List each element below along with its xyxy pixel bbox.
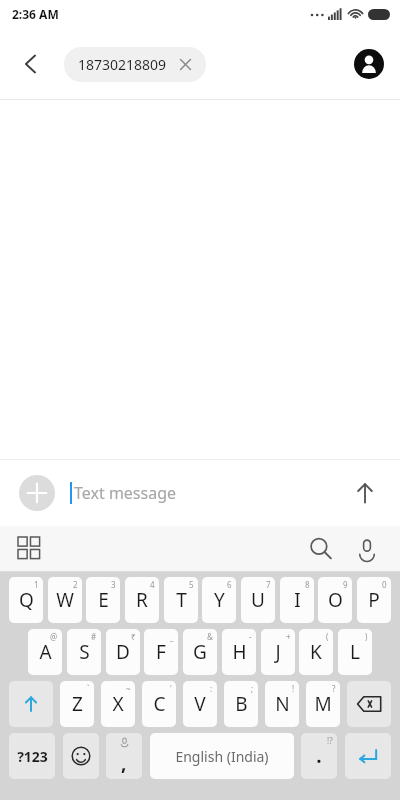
- staticText: 9: [343, 579, 348, 590]
- staticText: 1: [34, 579, 39, 590]
- button[interactable]: Contact profile: [354, 49, 384, 79]
- staticText: 18730218809: [78, 55, 167, 74]
- staticText: X: [112, 691, 124, 717]
- button[interactable]: V: [183, 681, 217, 727]
- staticText: Z: [72, 691, 83, 717]
- staticText: ?123: [17, 747, 48, 766]
- button[interactable]: U: [241, 577, 275, 623]
- button[interactable]: K: [299, 629, 333, 675]
- button[interactable]: Y: [202, 577, 236, 623]
- staticText: (: [326, 631, 329, 642]
- staticText: !: [292, 683, 295, 694]
- staticText: ': [170, 683, 172, 694]
- staticText: 3: [111, 579, 116, 590]
- button[interactable]: Emoji: [63, 733, 99, 779]
- button[interactable]: G: [183, 629, 217, 675]
- staticText: V: [194, 691, 206, 717]
- staticText: L: [350, 639, 360, 665]
- button[interactable]: ?123: [9, 733, 55, 779]
- button[interactable]: N: [265, 681, 299, 727]
- staticText: ;: [251, 683, 254, 694]
- staticText: Text message: [74, 482, 177, 504]
- staticText: !?: [327, 735, 333, 746]
- button[interactable]: 18730218809: [64, 47, 206, 82]
- staticText: B: [235, 691, 248, 717]
- button[interactable]: Search: [308, 536, 334, 562]
- staticText: U: [251, 587, 265, 613]
- staticText: K: [310, 639, 322, 665]
- button[interactable]: M: [306, 681, 340, 727]
- staticText: ): [365, 631, 368, 642]
- staticText: C: [153, 691, 166, 717]
- staticText: S: [79, 639, 90, 665]
- staticText: _: [170, 631, 174, 642]
- staticText: Q: [19, 587, 34, 613]
- staticText: &: [207, 631, 213, 642]
- staticText: 2: [73, 579, 78, 590]
- staticText: A: [39, 639, 52, 665]
- staticText: .: [316, 743, 322, 769]
- button[interactable]: Voice input: [354, 536, 380, 562]
- button[interactable]: J: [261, 629, 295, 675]
- staticText: 2:36 AM: [12, 6, 59, 22]
- button[interactable]: Comma: [106, 733, 142, 779]
- button[interactable]: Keyboard options: [18, 537, 42, 561]
- button[interactable]: Enter: [345, 733, 391, 779]
- button[interactable]: Back: [14, 47, 48, 81]
- button[interactable]: S: [67, 629, 101, 675]
- button[interactable]: .: [301, 733, 337, 779]
- button[interactable]: Z: [60, 681, 94, 727]
- staticText: ,: [121, 750, 127, 776]
- button[interactable]: Shift: [9, 681, 53, 727]
- button[interactable]: C: [142, 681, 176, 727]
- staticText: `: [87, 683, 90, 694]
- button[interactable]: L: [338, 629, 372, 675]
- button[interactable]: O: [318, 577, 352, 623]
- staticText: ~: [126, 683, 131, 694]
- button[interactable]: Q: [9, 577, 43, 623]
- staticText: D: [116, 639, 130, 665]
- staticText: I: [294, 587, 301, 613]
- staticText: 0: [382, 579, 387, 590]
- staticText: -: [249, 631, 252, 642]
- staticText: ?: [332, 683, 336, 694]
- staticText: H: [232, 639, 247, 665]
- button[interactable]: T: [164, 577, 198, 623]
- staticText: #: [91, 631, 97, 642]
- staticText: J: [275, 639, 281, 665]
- button[interactable]: Attach: [19, 475, 55, 511]
- staticText: P: [368, 587, 380, 613]
- button[interactable]: I: [280, 577, 314, 623]
- staticText: 5: [189, 579, 194, 590]
- staticText: @: [50, 631, 58, 642]
- staticText: 6: [227, 579, 232, 590]
- button[interactable]: H: [222, 629, 256, 675]
- staticText: R: [136, 587, 148, 613]
- button[interactable]: P: [357, 577, 391, 623]
- staticText: 4: [150, 579, 155, 590]
- staticText: O: [328, 587, 343, 613]
- button[interactable]: X: [101, 681, 135, 727]
- staticText: G: [193, 639, 207, 665]
- staticText: W: [56, 587, 74, 613]
- staticText: ₹: [131, 631, 136, 642]
- staticText: 7: [266, 579, 271, 590]
- button[interactable]: A: [28, 629, 62, 675]
- button[interactable]: English (India): [150, 733, 294, 779]
- button[interactable]: Send: [348, 476, 382, 510]
- button[interactable]: F: [144, 629, 178, 675]
- button[interactable]: D: [106, 629, 140, 675]
- staticText: T: [176, 587, 187, 613]
- button[interactable]: Backspace: [347, 681, 391, 727]
- staticText: E: [98, 587, 109, 613]
- staticText: :: [210, 683, 213, 694]
- button[interactable]: E: [86, 577, 120, 623]
- staticText: F: [156, 639, 166, 665]
- staticText: Y: [214, 587, 225, 613]
- button[interactable]: W: [48, 577, 82, 623]
- staticText: English (India): [175, 747, 269, 766]
- staticText: 8: [305, 579, 310, 590]
- button[interactable]: R: [125, 577, 159, 623]
- button[interactable]: B: [224, 681, 258, 727]
- staticText: M: [314, 691, 332, 717]
